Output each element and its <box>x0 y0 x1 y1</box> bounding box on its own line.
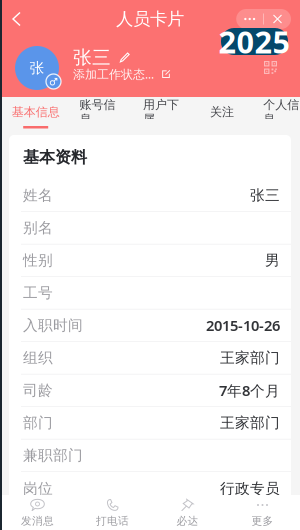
button[interactable]: 必达 <box>150 495 225 530</box>
staticText: 部门 <box>23 414 53 432</box>
button[interactable]: 用户下属 <box>121 97 181 135</box>
button[interactable]: 入职时间 <box>9 309 291 342</box>
staticText: 男 <box>265 251 280 269</box>
staticText: 7年8个月 <box>219 381 280 400</box>
staticText: 别名 <box>23 219 53 237</box>
staticText: 张三 <box>73 46 111 69</box>
button[interactable]: 发消息 <box>0 495 75 530</box>
staticText: 行政专员 <box>220 479 280 497</box>
staticText: 账号信息 <box>80 97 116 127</box>
button[interactable]: 性别 <box>9 244 291 277</box>
staticText: 关注 <box>210 105 234 119</box>
staticText: 性别 <box>23 251 53 269</box>
staticText: 发消息 <box>21 514 54 527</box>
button[interactable]: 账号信息 <box>60 97 121 135</box>
button[interactable]: 更多 <box>225 495 300 530</box>
staticText: 打电话 <box>96 514 129 527</box>
staticText: 工号 <box>23 284 53 302</box>
staticText: 姓名 <box>23 186 53 204</box>
staticText: 王家部门 <box>220 349 280 367</box>
button[interactable]: 个人信息 <box>242 97 300 135</box>
staticText: 基本信息 <box>12 105 60 119</box>
staticText: 兼职部门 <box>23 446 83 464</box>
button[interactable]: 打电话 <box>75 495 150 530</box>
button[interactable]: 部门 <box>9 407 291 439</box>
staticText: 基本资料 <box>23 147 87 167</box>
button[interactable]: Back <box>0 7 33 31</box>
button[interactable]: 基本信息 <box>0 97 60 135</box>
button[interactable]: More options <box>236 9 263 29</box>
staticText: 张 <box>29 59 44 77</box>
button[interactable]: 别名 <box>9 212 291 244</box>
button[interactable]: Close <box>264 9 291 29</box>
staticText: 司龄 <box>23 381 53 399</box>
staticText: 更多 <box>251 514 273 527</box>
staticText: 个人信息 <box>263 97 299 127</box>
staticText: 添加工作状态... <box>73 66 154 82</box>
staticText: 2025 <box>218 21 290 62</box>
button[interactable]: Edit work status <box>160 68 172 80</box>
button[interactable]: 司龄 <box>9 374 291 407</box>
staticText: 张三 <box>250 186 280 204</box>
staticText: 入职时间 <box>23 316 83 334</box>
button[interactable]: 姓名 <box>9 179 291 212</box>
staticText: 王家部门 <box>220 414 280 432</box>
button[interactable]: 兼职部门 <box>9 439 291 472</box>
button[interactable]: 工号 <box>9 277 291 309</box>
button[interactable]: 关注 <box>181 97 242 135</box>
staticText: 岗位 <box>23 479 53 497</box>
button[interactable]: Edit name <box>118 51 131 64</box>
staticText: 必达 <box>176 514 198 527</box>
button[interactable]: 组织 <box>9 342 291 374</box>
staticText: 组织 <box>23 349 53 367</box>
staticText: 用户下属 <box>143 97 179 127</box>
staticText: 2015-10-26 <box>206 316 280 335</box>
staticText: 人员卡片 <box>116 8 184 30</box>
button[interactable]: 岗位 <box>9 472 291 505</box>
